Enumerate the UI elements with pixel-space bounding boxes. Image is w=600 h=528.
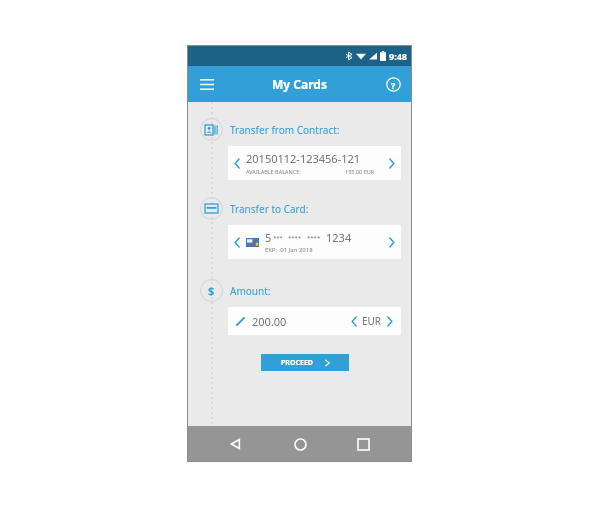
staticText: PROCEED: [281, 358, 313, 368]
button[interactable]: Previous: [228, 225, 401, 259]
staticText: 20150112-123456-121: [246, 151, 361, 166]
staticText: 5: [265, 230, 272, 245]
staticText: AVAILABLE BALANCE:: [246, 168, 301, 175]
button[interactable]: Edit amount: [228, 307, 401, 335]
button[interactable]: Back: [221, 429, 251, 459]
staticText: EXP: 01 Jan 2018: [265, 246, 313, 254]
staticText: 155.00 EUR: [345, 168, 375, 175]
staticText: 9:48: [389, 50, 407, 62]
button[interactable]: Next currency: [387, 316, 393, 327]
staticText: ****: [307, 234, 321, 242]
staticText: My Cards: [272, 76, 327, 92]
staticText: Transfer to Card:: [230, 202, 309, 216]
button[interactable]: PROCEED: [261, 354, 349, 371]
button[interactable]: Open navigation menu: [196, 73, 218, 95]
button[interactable]: Next: [389, 237, 395, 248]
other: Edit amount: [236, 317, 245, 326]
staticText: ?: [391, 79, 396, 91]
button[interactable]: Previous: [234, 237, 240, 248]
button[interactable]: Next: [389, 158, 395, 169]
staticText: Amount:: [230, 284, 271, 298]
staticText: EUR: [362, 314, 382, 328]
button[interactable]: Recent apps: [348, 429, 378, 459]
button[interactable]: Previous currency: [351, 316, 357, 327]
staticText: 1234: [326, 230, 352, 245]
button[interactable]: Help: [382, 73, 404, 95]
button[interactable]: Previous: [234, 158, 240, 169]
staticText: 200.00: [252, 314, 287, 329]
button[interactable]: Previous: [228, 146, 401, 180]
staticText: ****: [288, 234, 302, 242]
staticText: ***: [273, 234, 283, 242]
staticText: $: [208, 283, 215, 298]
button[interactable]: Home: [285, 429, 315, 459]
staticText: Transfer from Contract:: [230, 123, 340, 137]
